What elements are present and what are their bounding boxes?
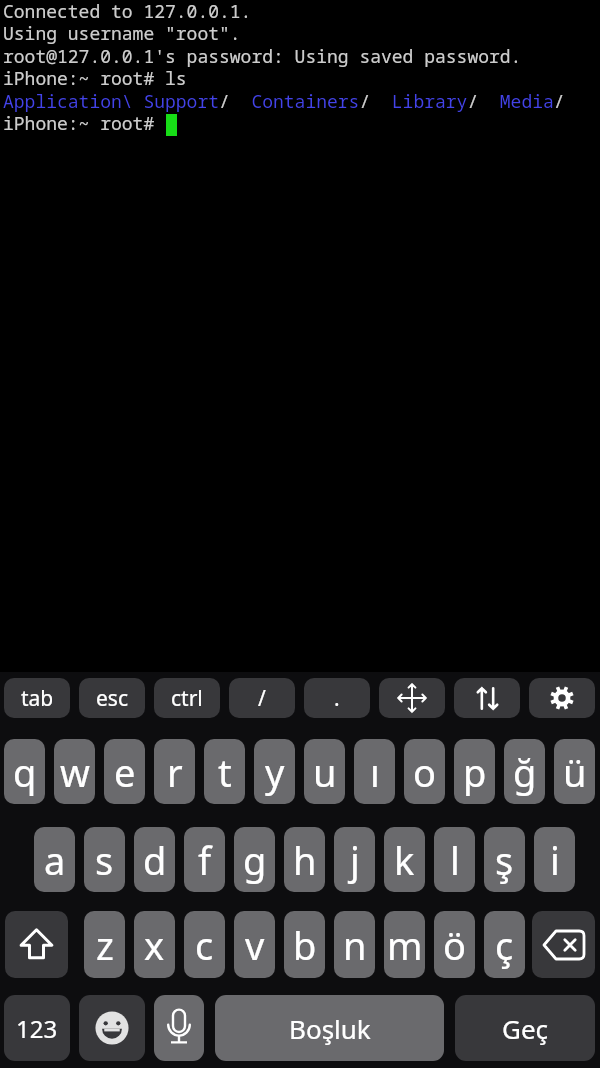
button[interactable]: c <box>184 911 225 978</box>
button[interactable]: e <box>104 739 145 804</box>
staticText: r <box>167 746 183 798</box>
staticText: Geç <box>502 1011 549 1046</box>
button[interactable]: b <box>284 911 325 978</box>
button[interactable]: i <box>534 827 575 892</box>
button[interactable]: ö <box>434 911 475 978</box>
staticText: ç <box>495 919 514 971</box>
staticText: w <box>60 746 90 798</box>
button[interactable]: ctrl <box>154 678 220 718</box>
staticText: . <box>334 684 340 713</box>
staticText: p <box>463 746 487 798</box>
staticText: c <box>195 919 214 971</box>
button[interactable]: y <box>254 739 295 804</box>
button[interactable]: l <box>434 827 475 892</box>
staticText: ctrl <box>171 684 203 713</box>
staticText: Boşluk <box>289 1011 371 1046</box>
button[interactable]: ç <box>484 911 525 978</box>
button[interactable] <box>379 678 445 718</box>
button[interactable]: ı <box>354 739 395 804</box>
staticText: Using username "root". <box>3 21 241 46</box>
staticText: t <box>218 746 232 798</box>
staticText: iPhone:~ root# ls <box>3 66 187 91</box>
staticText: a <box>44 834 66 886</box>
staticText: k <box>394 834 415 886</box>
button[interactable]: t <box>204 739 245 804</box>
button[interactable]: k <box>384 827 425 892</box>
button[interactable]: / <box>229 678 295 718</box>
staticText: esc <box>96 684 128 713</box>
button[interactable]: ü <box>554 739 595 804</box>
staticText: v <box>245 919 265 971</box>
staticText: ı <box>370 746 380 798</box>
staticText: ğ <box>513 746 537 798</box>
staticText: e <box>114 746 136 798</box>
button[interactable]: m <box>384 911 425 978</box>
staticText: f <box>198 834 212 886</box>
button[interactable]: ğ <box>504 739 545 804</box>
staticText: h <box>293 834 317 886</box>
staticText: z <box>96 919 114 971</box>
button[interactable]: a <box>34 827 75 892</box>
button[interactable]: Geç <box>455 995 595 1061</box>
staticText: m <box>387 919 423 971</box>
button[interactable]: w <box>54 739 95 804</box>
staticText: u <box>313 746 337 798</box>
button[interactable]: 123 <box>4 995 70 1061</box>
staticText: n <box>343 919 367 971</box>
staticText: ö <box>443 919 466 971</box>
button[interactable]: p <box>454 739 495 804</box>
staticText: ü <box>563 746 587 798</box>
button[interactable]: Boşluk <box>215 995 444 1061</box>
button[interactable]: u <box>304 739 345 804</box>
button[interactable]: x <box>134 911 175 978</box>
button[interactable] <box>454 678 520 718</box>
button[interactable]: esc <box>79 678 145 718</box>
button[interactable]: ş <box>484 827 525 892</box>
staticText: s <box>95 834 114 886</box>
staticText: i <box>550 834 560 886</box>
button[interactable] <box>79 995 145 1061</box>
button[interactable]: n <box>334 911 375 978</box>
staticText: y <box>265 746 285 798</box>
staticText: q <box>13 746 37 798</box>
staticText: x <box>144 919 165 971</box>
button[interactable]: f <box>184 827 225 892</box>
button[interactable]: h <box>284 827 325 892</box>
button[interactable]: r <box>154 739 195 804</box>
staticText: Connected to 127.0.0.1. <box>3 0 252 24</box>
button[interactable]: g <box>234 827 275 892</box>
staticText: g <box>243 834 267 886</box>
button[interactable]: tab <box>4 678 70 718</box>
staticText: ş <box>495 834 514 886</box>
button[interactable]: s <box>84 827 125 892</box>
staticText: j <box>350 834 360 886</box>
staticText: d <box>143 834 167 886</box>
staticText: tab <box>21 684 54 713</box>
staticText: o <box>413 746 436 798</box>
button[interactable]: v <box>234 911 275 978</box>
button[interactable]: j <box>334 827 375 892</box>
button[interactable]: z <box>84 911 125 978</box>
button[interactable] <box>5 911 68 978</box>
staticText: / <box>258 684 266 713</box>
staticText: l <box>450 834 460 886</box>
staticText: Application\ Support/ Containers/ Librar… <box>3 89 565 114</box>
button[interactable] <box>529 678 595 718</box>
staticText: 123 <box>16 1012 58 1045</box>
button[interactable]: q <box>4 739 45 804</box>
button[interactable]: . <box>304 678 370 718</box>
button[interactable]: d <box>134 827 175 892</box>
button[interactable] <box>532 911 595 978</box>
staticText: b <box>293 919 317 971</box>
staticText: root@127.0.0.1's password: Using saved p… <box>3 44 522 69</box>
button[interactable]: o <box>404 739 445 804</box>
button[interactable] <box>154 995 204 1061</box>
staticText: iPhone:~ root# <box>3 111 165 136</box>
